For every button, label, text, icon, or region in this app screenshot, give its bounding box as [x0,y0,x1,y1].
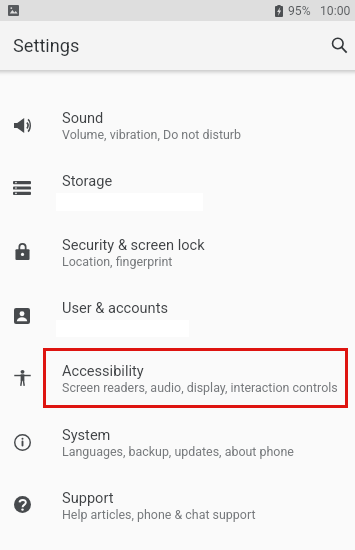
button[interactable]: Accessibility [0,351,355,409]
staticText: Location, fingerprint [62,254,173,269]
staticText: System [62,426,111,443]
staticText: Help articles, phone & chat support [62,507,256,522]
staticText: Accessibility [62,362,144,379]
staticText: Settings [13,35,80,56]
button[interactable]: User & accounts [0,288,355,346]
button[interactable]: Support [0,478,355,536]
staticText: Screen readers, audio, display, interact… [62,380,338,395]
staticText: Support [62,489,114,506]
staticText: User & accounts [62,299,168,316]
button[interactable]: System [0,415,355,473]
staticText: Sound [62,109,104,126]
staticText: Volume, vibration, Do not disturb [62,127,242,142]
button[interactable]: Search [314,26,354,66]
button[interactable]: Security & screen lock [0,225,355,283]
staticText: 95% [288,4,311,18]
staticText: Security & screen lock [62,236,205,253]
staticText: 10:00 [320,4,351,18]
button[interactable]: Sound [0,98,355,156]
button[interactable]: Storage [0,161,355,219]
staticText: Storage [62,172,113,189]
staticText: Languages, backup, updates, about phone [62,444,294,459]
